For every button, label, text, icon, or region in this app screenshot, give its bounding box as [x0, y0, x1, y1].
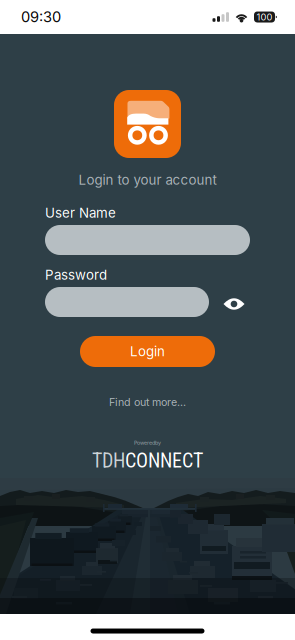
button[interactable]: Find out more... — [0, 394, 295, 410]
button[interactable]: Login — [80, 336, 215, 367]
staticText: CONNECT — [125, 449, 203, 472]
staticText: Poweredby — [134, 440, 161, 446]
staticText: User Name — [45, 205, 116, 221]
staticText: 100 — [256, 11, 272, 23]
staticText: Password — [45, 267, 107, 283]
staticText: Login to your account — [78, 172, 216, 188]
staticText: Login — [130, 343, 165, 359]
button[interactable]: Show password — [222, 295, 246, 313]
staticText: Find out more... — [109, 395, 186, 408]
staticText: 09:30 — [21, 8, 61, 26]
staticText: TDH — [92, 449, 125, 472]
